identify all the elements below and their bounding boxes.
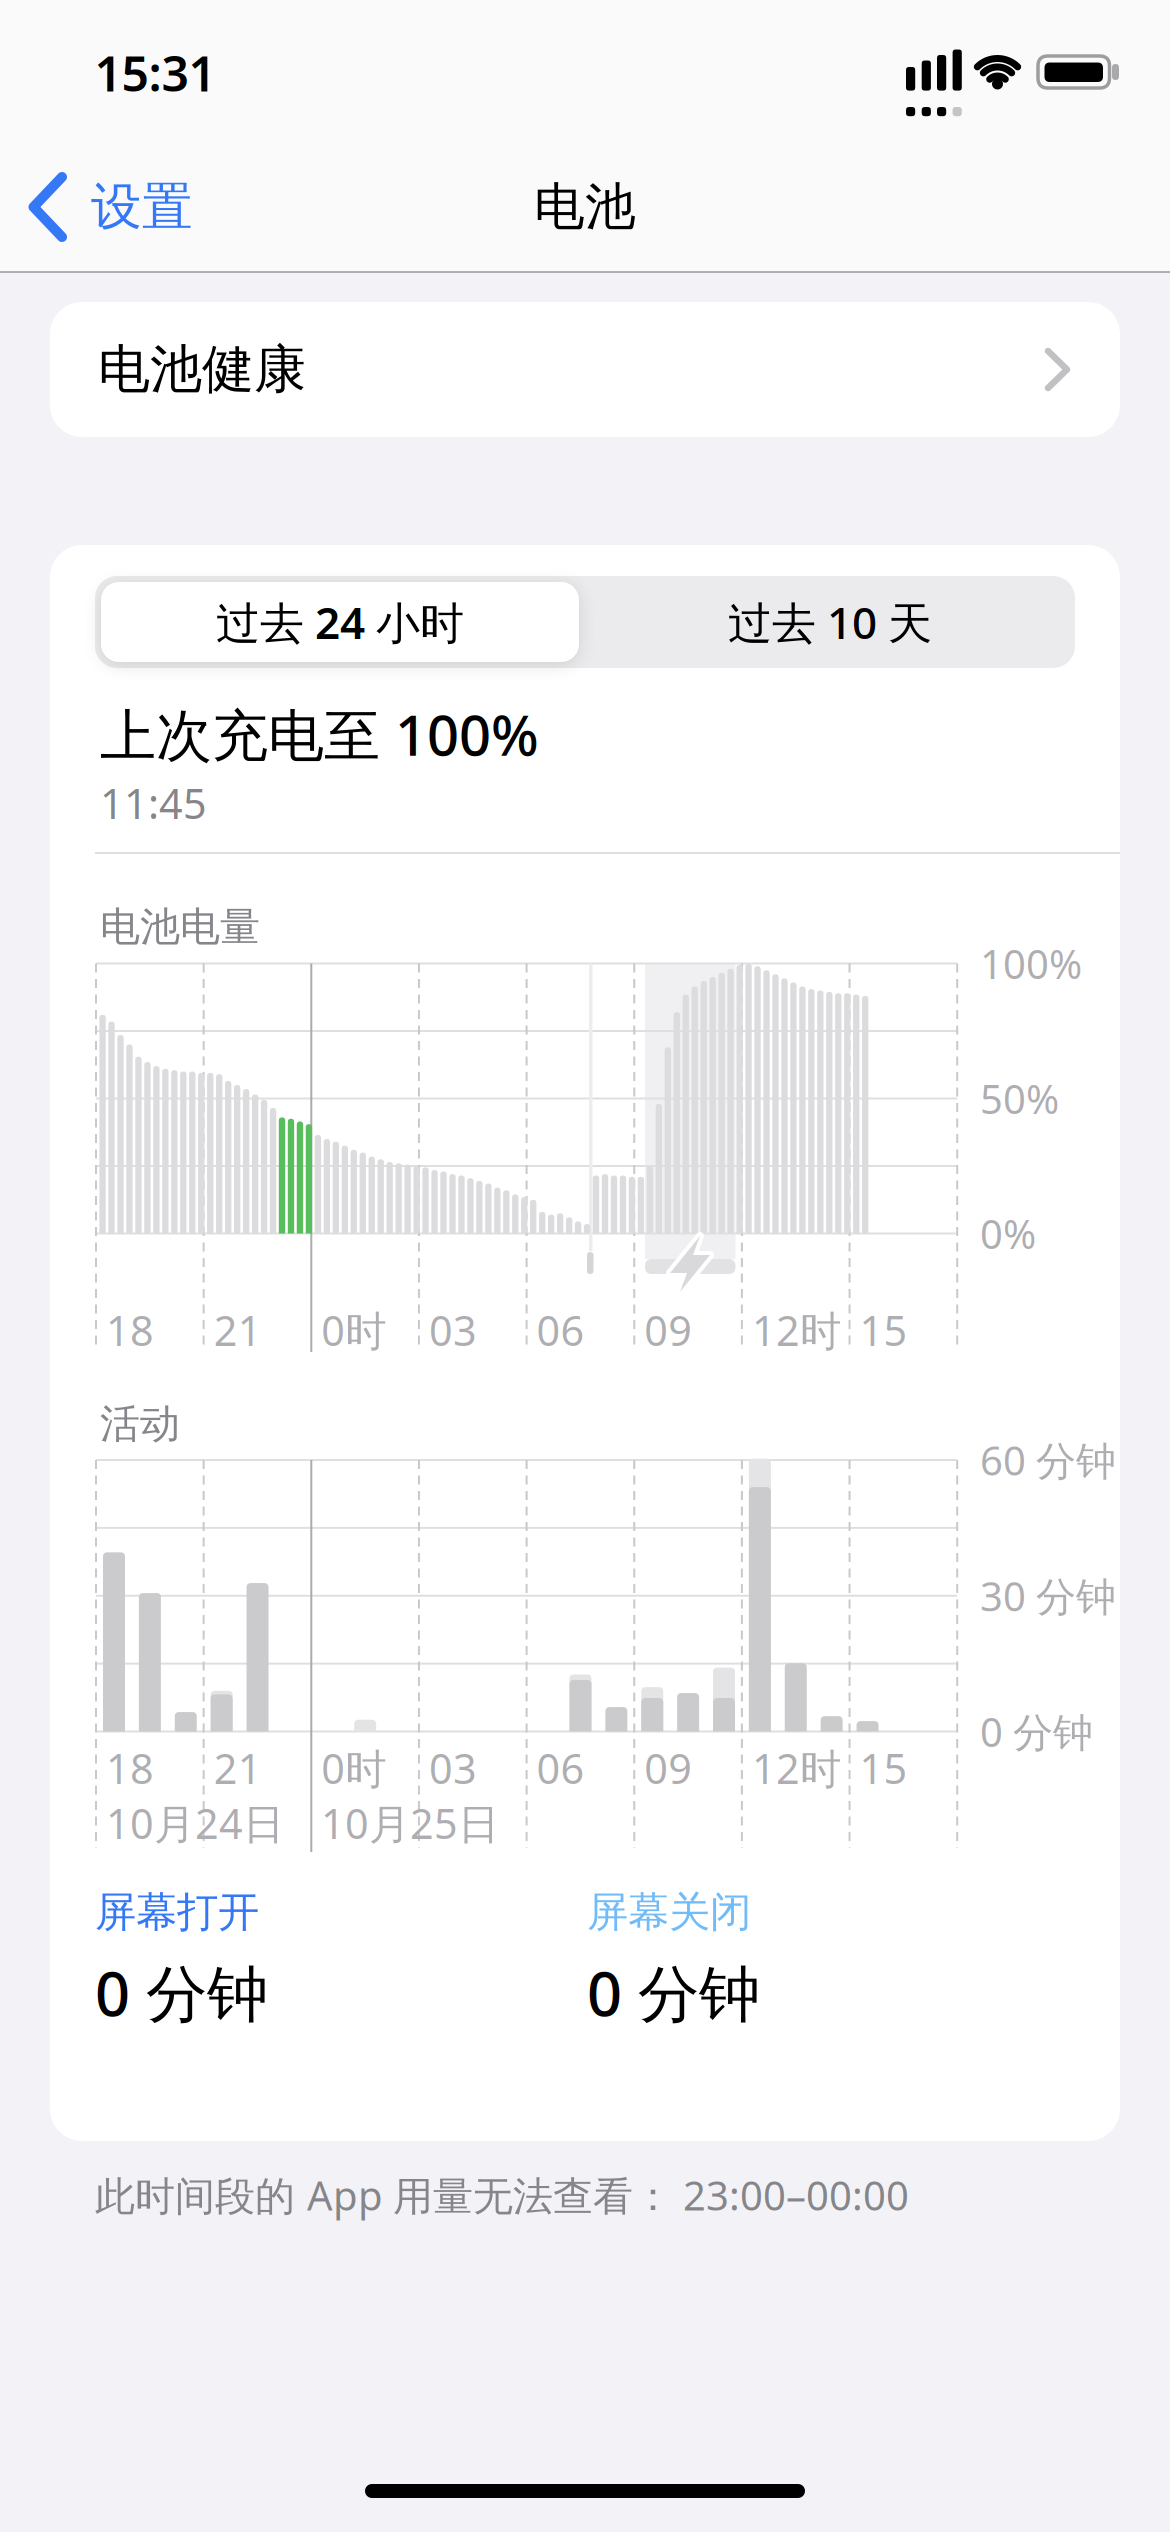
- button[interactable]: 设置: [24, 170, 210, 244]
- staticText: 100%: [980, 937, 1082, 990]
- staticText: 15:31: [94, 41, 215, 105]
- staticText: 21: [214, 1303, 262, 1357]
- button[interactable]: 过去 10 天: [590, 582, 1070, 662]
- staticText: 0时: [321, 1303, 386, 1357]
- staticText: 过去 24 小时: [216, 593, 464, 651]
- staticText: 10月24日: [106, 1796, 284, 1850]
- staticText: 06: [537, 1741, 585, 1795]
- button[interactable]: 屏幕打开: [95, 1887, 515, 2033]
- button[interactable]: 电池健康: [50, 302, 1120, 437]
- staticText: 60 分钟: [980, 1433, 1116, 1486]
- staticText: 电池健康: [98, 338, 306, 401]
- staticText: 屏幕打开: [95, 1887, 259, 1938]
- staticText: 电池电量: [100, 902, 260, 951]
- staticText: 12时: [752, 1303, 841, 1357]
- staticText: 0 分钟: [587, 1952, 760, 2033]
- button[interactable]: 屏幕关闭: [587, 1887, 1007, 2033]
- staticText: 21: [214, 1741, 262, 1795]
- staticText: 15: [860, 1741, 908, 1795]
- staticText: 电池: [534, 176, 636, 238]
- staticText: 12时: [752, 1741, 841, 1795]
- staticText: 设置: [91, 176, 193, 238]
- staticText: 15: [860, 1303, 908, 1357]
- staticText: 屏幕关闭: [587, 1887, 751, 1938]
- staticText: 30 分钟: [980, 1569, 1116, 1622]
- staticText: 活动: [100, 1399, 180, 1448]
- staticText: 11:45: [100, 776, 207, 830]
- staticText: 0%: [980, 1207, 1036, 1260]
- staticText: 03: [429, 1741, 477, 1795]
- staticText: 09: [644, 1303, 692, 1357]
- staticText: 过去 10 天: [728, 593, 932, 651]
- staticText: 50%: [980, 1072, 1059, 1125]
- staticText: 0 分钟: [980, 1705, 1093, 1758]
- staticText: 18: [106, 1303, 154, 1357]
- staticText: 此时间段的 App 用量无法查看： 23:00–00:00: [95, 2168, 909, 2221]
- staticText: 10月25日: [321, 1796, 499, 1850]
- staticText: 上次充电至 100%: [100, 697, 539, 771]
- staticText: 03: [429, 1303, 477, 1357]
- staticText: 18: [106, 1741, 154, 1795]
- button[interactable]: 过去 24 小时: [101, 582, 579, 662]
- staticText: 06: [537, 1303, 585, 1357]
- staticText: 0时: [321, 1741, 386, 1795]
- staticText: 09: [644, 1741, 692, 1795]
- staticText: 0 分钟: [95, 1952, 268, 2033]
